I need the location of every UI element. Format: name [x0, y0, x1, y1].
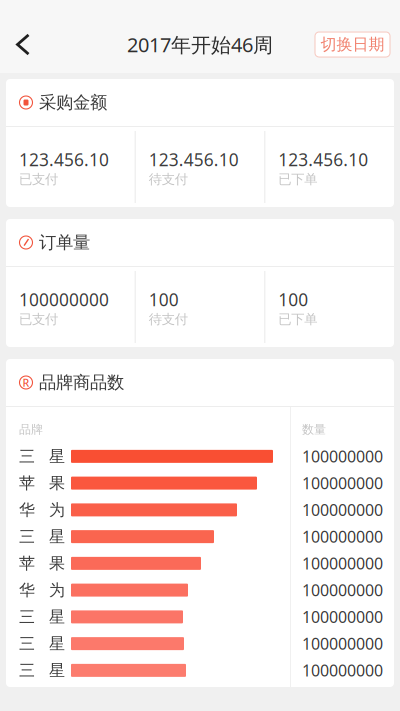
staticText: R — [22, 375, 29, 390]
staticText: 苹 — [19, 473, 35, 493]
staticText: 已支付 — [19, 171, 58, 187]
staticText: 123.456.10 — [19, 148, 109, 171]
staticText: 100000000 — [302, 606, 383, 627]
staticText: 果 — [49, 553, 65, 573]
staticText: 苹 — [19, 553, 35, 573]
staticText: 星 — [49, 660, 65, 680]
staticText: 已下单 — [278, 171, 317, 187]
staticText: 待支付 — [149, 311, 188, 327]
staticText: 为 — [49, 500, 65, 520]
staticText: 100000000 — [302, 499, 383, 520]
button[interactable]: Back — [0, 19, 46, 69]
staticText: 三 — [19, 446, 35, 466]
staticText: 三 — [19, 527, 35, 546]
staticText: 三 — [19, 634, 35, 653]
staticText: 100000000 — [302, 579, 383, 601]
staticText: 123.456.10 — [149, 148, 239, 171]
staticText: 100000000 — [302, 446, 383, 467]
staticText: 三 — [19, 660, 35, 680]
staticText: 华 — [19, 580, 35, 600]
staticText: 品牌 — [19, 422, 43, 437]
staticText: 100000000 — [302, 553, 383, 574]
staticText: 100000000 — [302, 660, 383, 681]
staticText: 为 — [49, 580, 65, 600]
staticText: 已下单 — [278, 311, 317, 327]
staticText: 品牌商品数 — [39, 372, 124, 393]
staticText: 数量 — [302, 422, 326, 437]
staticText: 123.456.10 — [278, 148, 368, 171]
staticText: 星 — [49, 634, 65, 653]
staticText: 100000000 — [302, 633, 383, 654]
staticText: 已支付 — [19, 311, 58, 327]
staticText: 100 — [149, 288, 179, 311]
staticText: 100000000 — [19, 288, 109, 311]
staticText: 华 — [19, 500, 35, 520]
staticText: 100 — [278, 288, 308, 311]
staticText: 三 — [19, 607, 35, 627]
staticText: 100000000 — [302, 526, 383, 547]
staticText: 星 — [49, 607, 65, 627]
staticText: 待支付 — [149, 171, 188, 187]
staticText: 订单量 — [39, 232, 90, 253]
staticText: 2017年开始46周 — [127, 31, 273, 58]
staticText: 采购金额 — [39, 92, 107, 113]
staticText: 切换日期 — [320, 35, 384, 54]
staticText: 果 — [49, 473, 65, 493]
staticText: 星 — [49, 446, 65, 466]
staticText: 100000000 — [302, 472, 383, 494]
staticText: 星 — [49, 527, 65, 546]
button[interactable]: 切换日期 — [315, 32, 390, 57]
